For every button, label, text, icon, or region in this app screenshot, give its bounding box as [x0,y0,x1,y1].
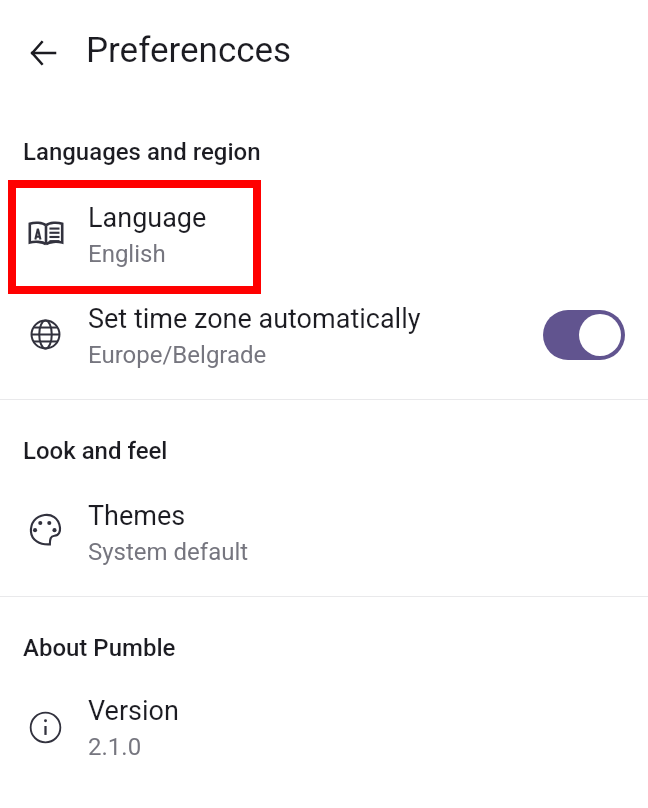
button[interactable]: Back [14,24,71,81]
staticText: 2.1.0 [88,733,142,761]
button[interactable]: Set time zone automatically [0,297,648,398]
button[interactable]: Language [0,196,648,297]
staticText: Set time zone automatically [88,303,421,335]
staticText: System default [88,538,249,566]
staticText: Languages and region [23,138,261,166]
button[interactable]: Set time zone automatically, on [543,310,625,360]
staticText: Europe/Belgrade [88,341,267,369]
staticText: Themes [88,500,186,532]
staticText: Look and feel [23,437,168,465]
staticText: Language [88,202,207,234]
staticText: Preferencces [86,30,292,71]
staticText: About Pumble [23,634,176,662]
staticText: English [88,240,166,268]
staticText: Version [88,695,179,727]
button[interactable]: Version [0,689,648,790]
button[interactable]: Themes [0,494,648,595]
